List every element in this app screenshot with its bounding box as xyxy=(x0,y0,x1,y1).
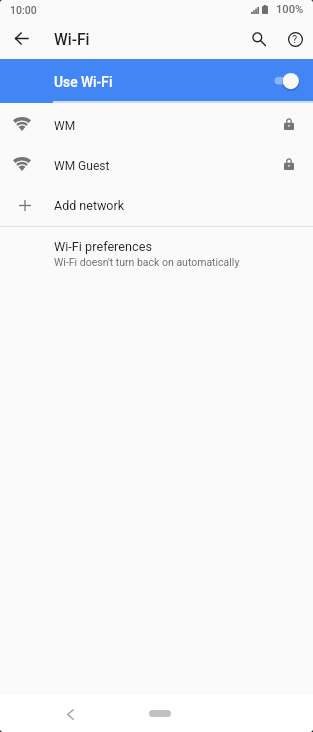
button[interactable]: Wi-Fi preferences xyxy=(0,227,313,280)
staticText: Wi-Fi doesn't turn back on automatically xyxy=(54,256,240,268)
staticText: Wi-Fi xyxy=(54,31,90,49)
staticText: Use Wi-Fi xyxy=(54,74,113,90)
button[interactable]: Navigate up xyxy=(8,25,34,51)
button[interactable]: Search xyxy=(244,24,274,54)
staticText: WM xyxy=(54,119,76,133)
staticText: 10:00 xyxy=(10,4,37,16)
button[interactable]: WM xyxy=(0,103,313,143)
button[interactable]: Add network xyxy=(0,183,313,224)
button[interactable]: Help xyxy=(280,24,310,54)
staticText: ? xyxy=(292,33,298,46)
button[interactable]: WM Guest xyxy=(0,143,313,183)
staticText: Wi-Fi preferences xyxy=(54,239,152,254)
button[interactable]: Back xyxy=(57,701,83,727)
button[interactable]: Use Wi-Fi xyxy=(0,59,313,101)
staticText: Add network xyxy=(54,198,125,213)
staticText: 100% xyxy=(276,3,304,16)
button[interactable]: Home xyxy=(149,710,171,717)
staticText: WM Guest xyxy=(54,159,110,173)
